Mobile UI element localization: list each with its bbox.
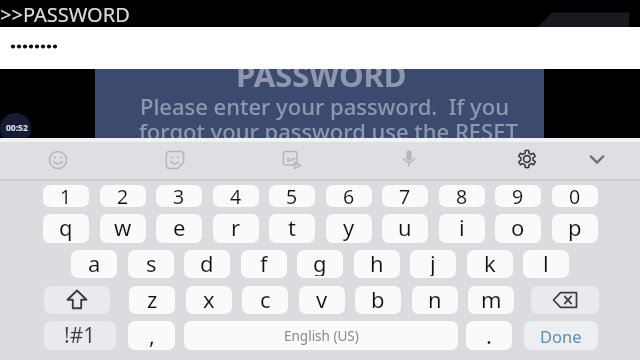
staticText: Please enter your password. If you	[140, 91, 509, 121]
staticText: w	[114, 214, 132, 241]
staticText: k	[484, 250, 496, 276]
staticText: e	[173, 214, 186, 241]
staticText: t	[288, 214, 296, 241]
staticText: y	[343, 214, 355, 241]
button[interactable]: q	[43, 214, 89, 243]
staticText: m	[481, 286, 502, 312]
button[interactable]: h	[354, 250, 400, 278]
staticText: 0	[569, 185, 581, 205]
button[interactable]: 5	[269, 185, 315, 207]
button[interactable]: d	[184, 250, 230, 278]
staticText: !#1	[64, 321, 96, 350]
staticText: f	[260, 250, 268, 276]
button[interactable]: .	[466, 321, 512, 350]
button[interactable]: 9	[495, 185, 541, 207]
staticText: z	[147, 286, 158, 312]
button[interactable]: 1	[43, 185, 89, 207]
button[interactable]: s	[128, 250, 174, 278]
staticText: 2	[117, 185, 129, 205]
button[interactable]: ,	[128, 321, 175, 350]
button[interactable]: x	[186, 286, 232, 314]
staticText: h	[370, 250, 384, 276]
button[interactable]: j	[410, 250, 456, 278]
button[interactable]: Hide keyboard	[582, 144, 612, 174]
staticText: 4	[230, 185, 242, 205]
button[interactable]: u	[382, 214, 428, 243]
staticText: Done	[540, 325, 582, 347]
button[interactable]: 8	[439, 185, 485, 207]
button[interactable]: English (US)	[184, 321, 458, 350]
staticText: n	[428, 286, 442, 312]
staticText: PASSWORD	[236, 54, 407, 96]
button[interactable]: !#1	[44, 321, 116, 350]
button[interactable]: n	[412, 286, 458, 314]
staticText: a	[88, 250, 101, 276]
staticText: 9	[512, 185, 524, 205]
button[interactable]: o	[495, 214, 541, 243]
staticText: q	[59, 214, 73, 241]
staticText: English (US)	[284, 327, 359, 345]
staticText: u	[398, 214, 412, 241]
button[interactable]: Voice input	[394, 144, 424, 174]
staticText: 8	[456, 185, 468, 205]
staticText: x	[203, 286, 215, 312]
staticText: o	[511, 214, 525, 241]
button[interactable]: Shift	[44, 286, 110, 314]
button[interactable]: y	[326, 214, 372, 243]
button[interactable]: 3	[156, 185, 202, 207]
button[interactable]: b	[355, 286, 401, 314]
button[interactable]: Backspace	[531, 286, 599, 314]
button[interactable]: v	[299, 286, 345, 314]
button[interactable]: 6	[326, 185, 372, 207]
button[interactable]: m	[468, 286, 514, 314]
staticText: 6	[343, 185, 355, 205]
button[interactable]: l	[523, 250, 569, 278]
button[interactable]: Stickers	[160, 145, 190, 175]
button[interactable]: p	[552, 214, 598, 243]
staticText: j	[430, 250, 436, 276]
button[interactable]: r	[213, 214, 259, 243]
staticText: b	[371, 286, 385, 312]
staticText: 7	[399, 185, 411, 205]
staticText: forgot your password use the RESET	[139, 116, 518, 146]
button[interactable]: Timer	[0, 113, 31, 144]
button[interactable]: Emoji	[43, 145, 73, 175]
button[interactable]: 7	[382, 185, 428, 207]
button[interactable]: GIF	[277, 145, 307, 175]
staticText: v	[316, 286, 328, 312]
button[interactable]: a	[71, 250, 117, 278]
button[interactable]: i	[439, 214, 485, 243]
button[interactable]: f	[241, 250, 287, 278]
staticText: 5	[286, 185, 298, 205]
staticText: ,	[149, 321, 155, 349]
staticText: s	[146, 250, 157, 276]
button[interactable]: k	[467, 250, 513, 278]
staticText: 1	[60, 185, 72, 205]
staticText: c	[260, 286, 271, 312]
staticText: g	[313, 250, 327, 276]
staticText: 00:52	[6, 122, 28, 134]
staticText: i	[459, 214, 465, 241]
button[interactable]: t	[269, 214, 315, 243]
staticText: >>PASSWORD	[0, 1, 130, 28]
button[interactable]: Done	[524, 321, 598, 350]
button[interactable]: z	[129, 286, 175, 314]
button[interactable]: g	[297, 250, 343, 278]
button[interactable]: e	[156, 214, 202, 243]
button[interactable]: 2	[100, 185, 146, 207]
staticText: p	[568, 214, 582, 241]
staticText: l	[543, 250, 549, 276]
staticText: r	[231, 214, 241, 241]
button[interactable]: w	[100, 214, 146, 243]
button[interactable]: 4	[213, 185, 259, 207]
staticText: .	[486, 321, 492, 349]
staticText: d	[200, 250, 214, 276]
button[interactable]: c	[242, 286, 288, 314]
staticText: 3	[173, 185, 185, 205]
button[interactable]: 0	[552, 185, 598, 207]
button[interactable]: Keyboard settings	[512, 144, 542, 174]
